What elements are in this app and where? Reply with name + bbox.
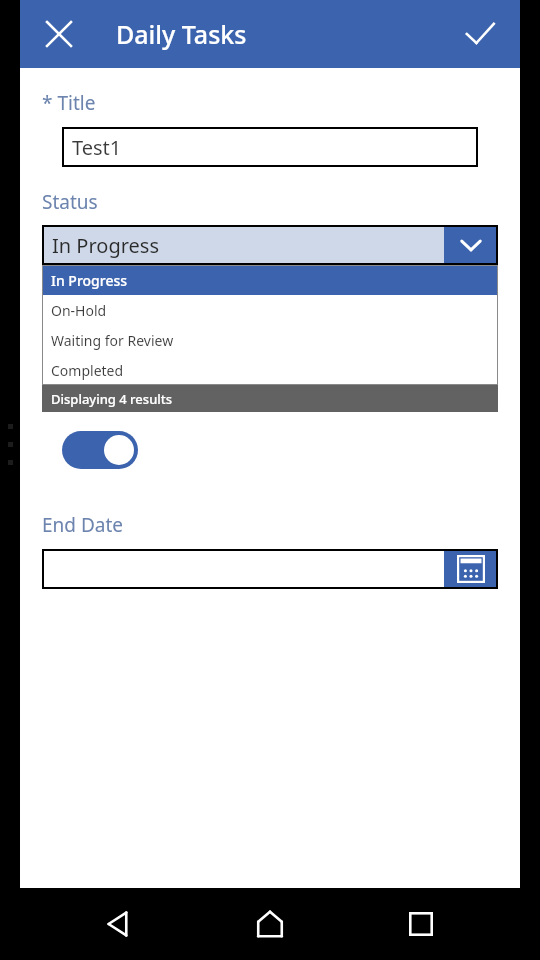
staticText: Test1 bbox=[72, 134, 122, 161]
button[interactable]: Save bbox=[456, 10, 504, 58]
button[interactable]: Test1 bbox=[62, 127, 478, 167]
staticText: Status bbox=[42, 189, 98, 215]
other: Open status list bbox=[444, 225, 498, 265]
button[interactable]: Waiting for Review bbox=[42, 325, 498, 355]
button[interactable]: Recent apps bbox=[389, 892, 453, 956]
staticText: * Title bbox=[42, 90, 96, 116]
button[interactable]: In Progress bbox=[42, 265, 498, 295]
button[interactable]: Close bbox=[35, 10, 83, 58]
staticText: In Progress bbox=[52, 232, 159, 259]
button[interactable]: Home bbox=[238, 892, 302, 956]
button[interactable] bbox=[42, 549, 444, 589]
staticText: In Progress bbox=[51, 271, 128, 290]
staticText: Waiting for Review bbox=[51, 331, 174, 350]
staticText: On-Hold bbox=[51, 301, 107, 320]
button[interactable]: Completed bbox=[42, 355, 498, 385]
button[interactable]: Back bbox=[87, 892, 151, 956]
staticText: Daily Tasks bbox=[116, 17, 247, 51]
button[interactable]: Pick date bbox=[444, 549, 498, 589]
staticText: Completed bbox=[51, 361, 124, 380]
button[interactable]: In Progress bbox=[42, 225, 498, 265]
staticText: Displaying 4 results bbox=[51, 390, 173, 408]
staticText: End Date bbox=[42, 512, 124, 538]
button[interactable]: Toggle enabled bbox=[62, 431, 138, 469]
button[interactable]: On-Hold bbox=[42, 295, 498, 325]
